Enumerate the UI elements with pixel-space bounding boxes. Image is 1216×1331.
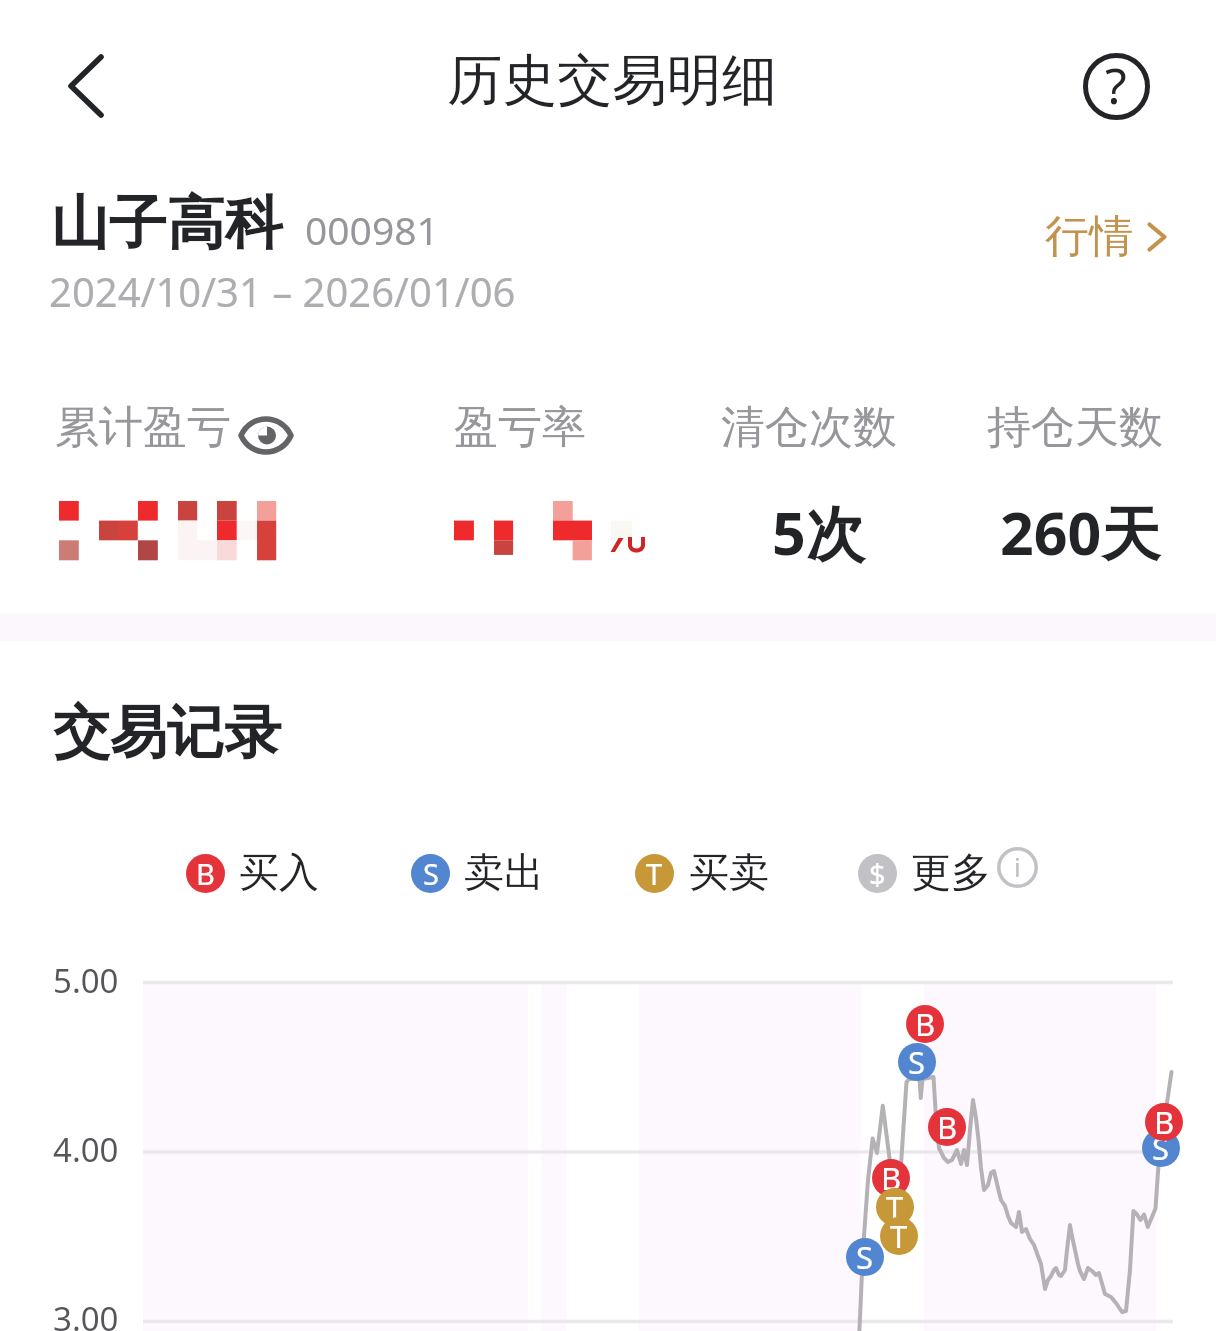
button[interactable]: $ (858, 848, 991, 898)
staticText: S (423, 854, 439, 893)
staticText: 买卖 (689, 847, 769, 897)
button[interactable]: S (1140, 1127, 1182, 1169)
staticText: 2024/10/31 – 2026/01/06 (49, 264, 516, 318)
staticText: 5次 (772, 492, 865, 573)
staticText: ? (1105, 51, 1127, 119)
button[interactable]: T (878, 1215, 920, 1257)
button[interactable]: Help (1082, 52, 1150, 120)
button[interactable]: T (635, 848, 769, 898)
button[interactable]: Info (997, 847, 1038, 888)
staticText: 更多 (911, 847, 991, 897)
staticText: B (881, 1157, 902, 1199)
button[interactable]: B (186, 848, 319, 898)
button[interactable]: S (896, 1041, 938, 1083)
staticText: B (196, 854, 215, 893)
staticText: 000981 (305, 203, 439, 256)
staticText: 4.00 (53, 1127, 119, 1172)
button[interactable]: B (1143, 1101, 1185, 1143)
staticText: $ (869, 854, 886, 893)
staticText: B (1154, 1101, 1175, 1143)
button[interactable]: Back (44, 44, 128, 128)
staticText: 清仓次数 (721, 400, 897, 455)
staticText: 卖出 (464, 847, 544, 897)
staticText: S (908, 1041, 926, 1083)
button[interactable]: S (411, 848, 544, 898)
staticText: 交易记录 (53, 697, 281, 769)
button[interactable]: B (904, 1003, 946, 1045)
staticText: T (646, 854, 663, 893)
staticText: 历史交易明细 (447, 46, 777, 115)
button[interactable]: B (870, 1157, 912, 1199)
staticText: T (886, 1186, 904, 1228)
staticText: 山子高科 (51, 187, 283, 260)
button[interactable]: B (926, 1106, 968, 1148)
staticText: 5.00 (53, 958, 119, 1003)
staticText: i (1014, 849, 1021, 884)
button[interactable]: S (844, 1236, 886, 1278)
staticText: S (1152, 1127, 1170, 1169)
button[interactable]: 累计盈亏 (55, 400, 293, 455)
staticText: 3.00 (53, 1296, 119, 1331)
staticText: B (937, 1106, 958, 1148)
staticText: 买入 (239, 847, 319, 897)
staticText: S (856, 1236, 874, 1278)
button[interactable]: T (874, 1186, 916, 1228)
staticText: T (890, 1215, 908, 1257)
button[interactable]: 行情 (1045, 209, 1167, 264)
staticText: 260天 (1000, 492, 1161, 573)
staticText: 持仓天数 (987, 400, 1163, 455)
staticText: 行情 (1045, 209, 1133, 264)
staticText: 累计盈亏 (55, 400, 231, 455)
staticText: B (915, 1003, 936, 1045)
staticText: 盈亏率 (454, 400, 586, 455)
